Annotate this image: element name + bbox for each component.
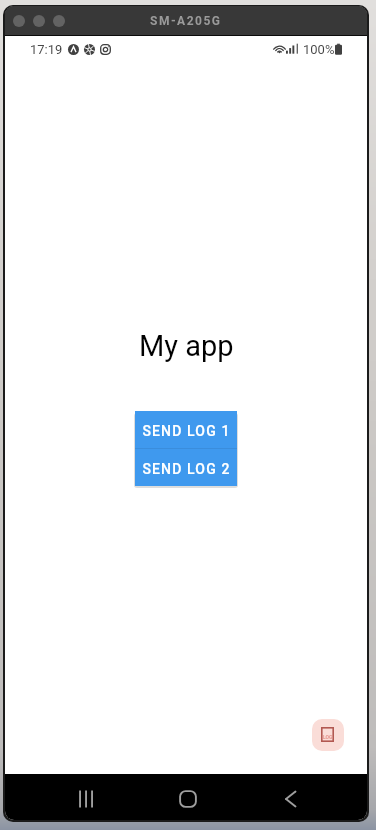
button[interactable]: Logs	[312, 719, 344, 751]
staticText: SEND LOG 2	[142, 461, 231, 477]
staticText: SM-A205G	[150, 14, 222, 28]
button[interactable]: SEND LOG 2	[135, 449, 237, 486]
button[interactable]: Back	[257, 781, 325, 817]
staticText: SEND LOG 1	[142, 423, 231, 439]
button[interactable]: Recents	[52, 781, 120, 817]
staticText: 100%	[303, 42, 335, 57]
button[interactable]: SEND LOG 1	[135, 411, 237, 448]
staticText: My app	[139, 329, 234, 363]
staticText: 17:19	[30, 42, 63, 57]
staticText: LOG	[323, 734, 333, 740]
button[interactable]: Home	[154, 781, 222, 817]
